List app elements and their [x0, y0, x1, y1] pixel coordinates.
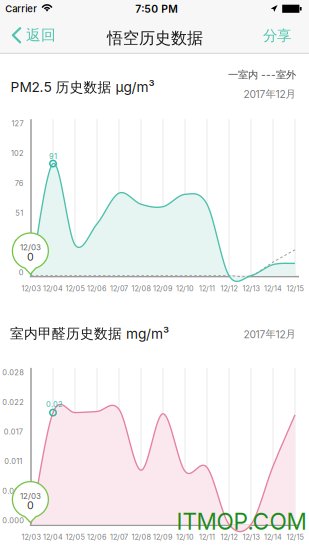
button[interactable]: 返回	[0, 0, 309, 550]
staticText: 12/11	[199, 284, 215, 293]
staticText: 12/10	[176, 533, 194, 542]
staticText: 12/05	[65, 533, 84, 542]
staticText: 0.006	[2, 486, 24, 495]
staticText: 12/06	[87, 284, 107, 293]
staticText: 2017年12月	[243, 328, 295, 341]
staticText: 12/13	[242, 533, 259, 542]
staticText: 12/03	[20, 243, 41, 252]
staticText: 0.028	[2, 368, 24, 377]
staticText: ITMOP.COM	[176, 508, 306, 535]
staticText: 0.02	[46, 400, 63, 409]
staticText: 0.011	[4, 457, 22, 466]
staticText: 12/04	[43, 533, 63, 542]
staticText: 12/13	[242, 284, 259, 293]
staticText: 0.022	[2, 398, 24, 407]
staticText: 0	[27, 499, 34, 512]
staticText: 12/04	[43, 284, 63, 293]
staticText: 76	[15, 179, 24, 188]
staticText: 12/07	[110, 533, 128, 542]
staticText: 返回	[26, 26, 56, 44]
staticText: 12/08	[131, 284, 150, 293]
staticText: 12/12	[220, 533, 237, 542]
staticText: 12/14	[264, 284, 282, 293]
button[interactable]: 分享	[0, 0, 309, 550]
staticText: 12/11	[199, 533, 215, 542]
staticText: 12/05	[65, 284, 84, 293]
staticText: 12/03	[21, 284, 40, 293]
staticText: 12/03	[20, 491, 41, 501]
staticText: Carrier	[5, 3, 37, 15]
staticText: 悟空历史数据	[107, 28, 203, 48]
staticText: 0.000	[2, 516, 24, 525]
staticText: 12/15	[286, 533, 303, 542]
staticText: 12/08	[131, 533, 150, 542]
staticText: 25	[14, 238, 24, 247]
staticText: 102	[11, 149, 24, 158]
staticText: 分享	[263, 27, 291, 45]
staticText: 12/07	[110, 284, 128, 293]
staticText: 12/09	[153, 533, 173, 542]
staticText: 0	[27, 250, 34, 263]
staticText: 12/06	[87, 533, 107, 542]
staticText: 127	[11, 119, 23, 128]
staticText: 12/12	[220, 284, 237, 293]
staticText: 室内甲醛历史数据 mg/m³	[10, 325, 169, 342]
staticText: 一室内 ---室外	[228, 68, 296, 81]
staticText: 12/14	[264, 533, 282, 542]
staticText: 51	[15, 208, 23, 217]
staticText: PM2.5 历史数据 μg/m³	[10, 79, 154, 96]
staticText: 12/03	[21, 533, 40, 542]
staticText: 0	[19, 268, 24, 277]
staticText: 2017年12月	[243, 87, 295, 100]
staticText: 7:50 PM	[135, 3, 178, 15]
staticText: 12/10	[176, 284, 194, 293]
staticText: 12/09	[153, 284, 173, 293]
staticText: 91	[49, 152, 57, 161]
staticText: 12/15	[286, 284, 303, 293]
staticText: 0.017	[4, 427, 23, 436]
